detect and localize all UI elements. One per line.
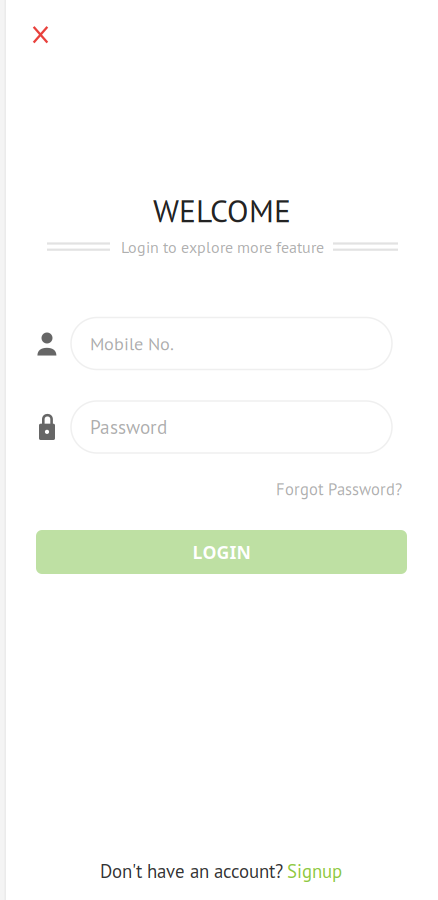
button[interactable]: Forgot Password? — [270, 471, 408, 507]
staticText: Mobile No. — [90, 332, 174, 355]
staticText: Forgot Password? — [276, 478, 402, 500]
button[interactable]: Signup — [287, 859, 342, 883]
staticText: Password — [90, 415, 167, 439]
button[interactable]: Close — [18, 13, 62, 57]
staticText: Login to explore more feature — [121, 237, 324, 257]
staticText: Don't have an account? — [100, 859, 283, 883]
staticText: LOGIN — [192, 540, 250, 564]
staticText: WELCOME — [153, 190, 291, 231]
button[interactable]: LOGIN — [36, 530, 407, 574]
staticText: Signup — [287, 859, 342, 883]
